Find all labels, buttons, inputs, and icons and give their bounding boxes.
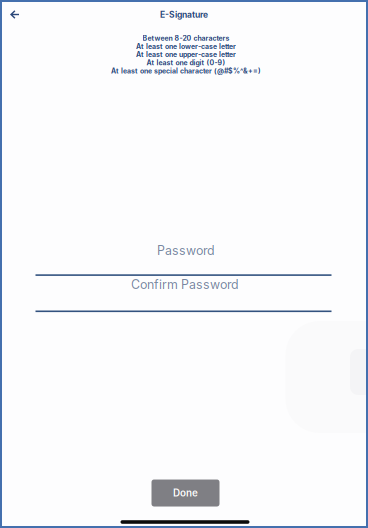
staticText: E-Signature [160,9,208,20]
staticText: Between 8-20 characters [142,34,229,42]
staticText: At least one lower-case letter [136,42,236,51]
button[interactable]: Password [35,246,331,276]
button[interactable]: Back [1,3,27,25]
staticText: At least one special character (@#$%^&+=… [111,67,261,75]
staticText: Done [173,487,198,499]
button[interactable]: Confirm Password [35,282,331,312]
staticText: At least one digit (0-9) [146,59,225,67]
staticText: Password [157,243,215,258]
staticText: At least one upper-case letter [136,50,236,59]
button[interactable]: Done [151,479,219,506]
staticText: Confirm Password [131,277,239,292]
